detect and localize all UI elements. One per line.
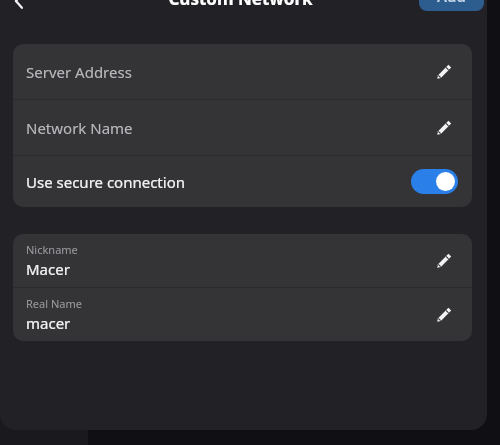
staticText: Network Name <box>26 118 428 138</box>
staticText: Custom Network <box>168 0 313 10</box>
button[interactable]: Edit <box>428 113 458 143</box>
button[interactable]: Use secure connection <box>13 156 472 207</box>
button[interactable]: Edit <box>428 57 458 87</box>
button[interactable]: Real Name <box>13 288 472 341</box>
staticText: Add <box>437 0 466 6</box>
button[interactable]: Use secure connection toggle <box>411 169 458 194</box>
button[interactable]: Add <box>419 0 484 11</box>
staticText: macer <box>26 313 71 333</box>
button[interactable]: Edit <box>428 246 458 276</box>
button[interactable]: Back <box>2 0 36 16</box>
button[interactable]: Edit <box>428 300 458 330</box>
staticText: Use secure connection <box>26 172 411 192</box>
staticText: Real Name <box>26 296 82 311</box>
staticText: Server Address <box>26 62 428 82</box>
button[interactable]: Nickname <box>13 234 472 287</box>
staticText: Nickname <box>26 242 78 257</box>
staticText: Macer <box>26 259 70 279</box>
button[interactable]: Server Address <box>13 44 472 99</box>
button[interactable]: Network Name <box>13 100 472 155</box>
